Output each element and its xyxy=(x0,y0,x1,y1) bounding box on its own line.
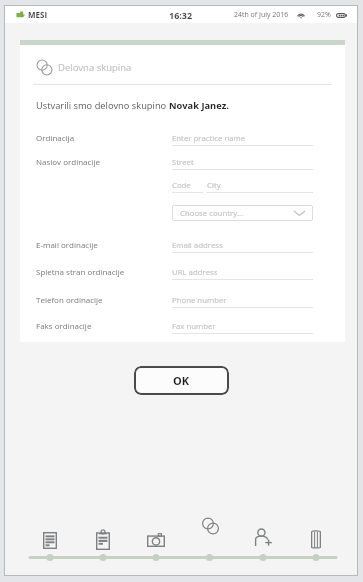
button[interactable]: Delovna skupina xyxy=(36,58,132,76)
button[interactable]: Documents xyxy=(31,524,69,556)
staticText: E-mail ordinacije xyxy=(36,239,98,250)
staticText: Spletna stran ordinacije xyxy=(36,266,125,277)
button[interactable]: Add person xyxy=(244,521,282,553)
staticText: Email address xyxy=(172,240,223,251)
button[interactable]: Clipboard xyxy=(84,523,122,555)
staticText: 24th of July 2016 xyxy=(234,10,289,20)
button[interactable]: Choose country... xyxy=(172,205,313,221)
staticText: Code xyxy=(172,180,191,191)
button[interactable]: OK xyxy=(134,366,229,395)
staticText: Delovna skupina xyxy=(58,61,132,74)
staticText: Enter practice name xyxy=(172,133,246,144)
staticText: Telefon ordinacije xyxy=(36,294,103,305)
staticText: Novak Janez. xyxy=(169,99,229,112)
staticText: Ustvarili smo delovno skupino xyxy=(36,99,169,112)
button[interactable]: Work group xyxy=(191,510,229,542)
staticText: Fax number xyxy=(172,321,216,332)
staticText: Phone number xyxy=(172,295,227,306)
staticText: 92% xyxy=(317,10,331,20)
staticText: URL address xyxy=(172,267,218,278)
button[interactable]: Camera xyxy=(137,524,175,556)
staticText: Street xyxy=(172,157,194,168)
staticText: 16:32 xyxy=(169,9,193,21)
staticText: Ordinacija xyxy=(36,132,75,143)
staticText: Faks ordinacije xyxy=(36,320,92,331)
staticText: City xyxy=(207,180,221,191)
button[interactable]: Device xyxy=(297,523,335,555)
staticText: OK xyxy=(173,373,190,388)
staticText: Naslov ordinacije xyxy=(36,156,100,167)
staticText: MESI xyxy=(28,9,48,20)
staticText: Choose country... xyxy=(180,208,244,219)
